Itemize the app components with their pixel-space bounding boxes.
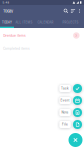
button[interactable]: PROJECTS [57, 17, 84, 28]
staticText: Task [61, 87, 69, 90]
button[interactable]: More options [76, 6, 82, 15]
staticText: Overdue items [3, 34, 26, 37]
button[interactable]: Completed items [0, 43, 84, 54]
staticText: PROJECTS [62, 21, 78, 24]
button[interactable]: Close actions [68, 130, 84, 147]
button[interactable]: ALL ITEMS [14, 17, 34, 28]
staticText: ALL ITEMS [15, 21, 32, 24]
staticText: CALENDAR [37, 21, 53, 24]
button[interactable]: Task [59, 82, 84, 94]
button[interactable]: Event [59, 94, 84, 106]
staticText: TODAY [2, 21, 12, 24]
button[interactable]: Search [62, 6, 69, 15]
button[interactable]: Overdue items [0, 28, 84, 43]
staticText: Event [60, 99, 69, 102]
staticText: 3 [75, 34, 77, 37]
button[interactable]: TODAY [0, 17, 14, 28]
staticText: Today [3, 9, 13, 13]
button[interactable]: CALENDAR [34, 17, 57, 28]
staticText: 5:48 [3, 1, 10, 4]
staticText: File [62, 123, 68, 126]
staticText: Note [61, 111, 68, 114]
button[interactable]: File [59, 118, 84, 130]
button[interactable]: Sort [69, 6, 76, 15]
button[interactable]: Note [59, 106, 84, 118]
staticText: Completed items [3, 47, 30, 50]
